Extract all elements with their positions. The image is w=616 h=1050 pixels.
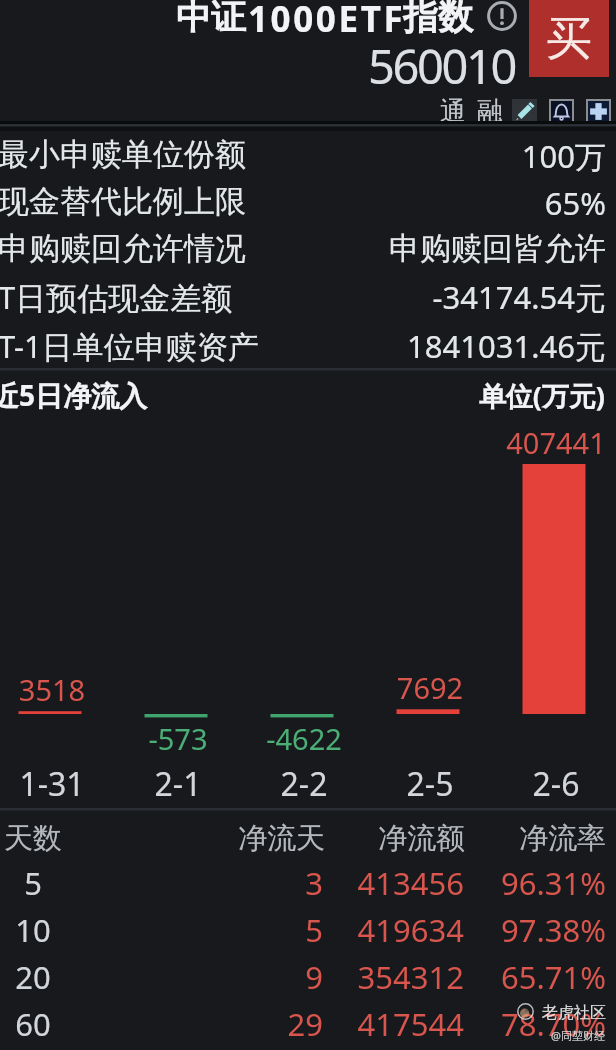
button[interactable]: 现金替代比例上限 xyxy=(0,176,616,223)
staticText: 2-2 xyxy=(204,762,404,806)
staticText: 3518 xyxy=(0,670,152,709)
staticText: 7692 xyxy=(330,668,530,707)
staticText: 指数 xyxy=(403,0,473,39)
button[interactable]: 5 xyxy=(0,858,616,905)
staticText: 老虎社区 xyxy=(542,1003,606,1023)
staticText: 净流天 xyxy=(0,820,325,857)
staticText: 417544 xyxy=(44,1003,464,1045)
staticText: 买 xyxy=(546,10,592,68)
staticText: T-1日单位申赎资产 xyxy=(0,325,259,367)
staticText: 60 xyxy=(0,1003,133,1045)
button[interactable]: 买 xyxy=(529,0,609,77)
staticText: 5 xyxy=(0,909,323,951)
staticText: 天数 xyxy=(4,820,62,857)
staticText: 1000ETF xyxy=(248,0,406,43)
staticText: 407441 xyxy=(456,423,616,462)
staticText: 2-5 xyxy=(330,762,530,806)
staticText: 单位(万元) xyxy=(185,377,605,414)
button[interactable]: 10 xyxy=(0,905,616,952)
staticText: 10 xyxy=(0,909,133,951)
staticText: -573 xyxy=(78,719,278,758)
button[interactable]: T-1日单位申赎资产 xyxy=(0,319,616,366)
staticText: 65.71% xyxy=(186,956,606,998)
staticText: 29 xyxy=(0,1003,323,1045)
staticText: 净流率 xyxy=(186,820,606,857)
button[interactable]: 申购赎回允许情况 xyxy=(0,223,616,270)
staticText: 97.38% xyxy=(186,909,606,951)
staticText: 净流额 xyxy=(45,820,465,857)
staticText: -34174.54元 xyxy=(186,276,606,318)
staticText: 申购赎回允许情况 xyxy=(0,229,246,268)
staticText: 100万 xyxy=(186,135,606,177)
staticText: T日预估现金差额 xyxy=(0,276,233,318)
staticText: 96.31% xyxy=(186,862,606,904)
staticText: 通 xyxy=(440,95,466,128)
button[interactable]: Info xyxy=(487,1,517,31)
staticText: 申购赎回皆允许 xyxy=(186,229,606,268)
staticText: @同堃财经 xyxy=(551,1028,605,1043)
staticText: 5 xyxy=(0,862,133,904)
button[interactable]: Edit xyxy=(512,99,537,124)
staticText: 2-1 xyxy=(78,762,278,806)
staticText: 78.70% xyxy=(186,1003,606,1045)
staticText: 9 xyxy=(0,956,323,998)
staticText: 1841031.46元 xyxy=(186,325,606,367)
staticText: 3 xyxy=(0,862,323,904)
staticText: -4622 xyxy=(204,719,404,758)
button[interactable]: 20 xyxy=(0,952,616,999)
staticText: 近5日净流入 xyxy=(0,376,148,414)
staticText: 融 xyxy=(477,95,503,128)
staticText: 2-6 xyxy=(456,762,616,806)
button[interactable]: 60 xyxy=(0,999,616,1046)
staticText: 现金替代比例上限 xyxy=(0,182,246,221)
button[interactable]: 最小申赎单位份额 xyxy=(0,129,616,176)
staticText: 20 xyxy=(0,956,133,998)
staticText: 354312 xyxy=(44,956,464,998)
button[interactable]: Price alert xyxy=(549,99,574,124)
staticText: 419634 xyxy=(44,909,464,951)
button[interactable]: Add to watchlist xyxy=(586,99,611,124)
staticText: 560010 xyxy=(368,34,515,98)
staticText: 中证 xyxy=(176,0,246,39)
staticText: 413456 xyxy=(44,862,464,904)
staticText: 1-31 xyxy=(0,762,152,806)
staticText: 65% xyxy=(186,182,606,224)
button[interactable]: T日预估现金差额 xyxy=(0,270,616,317)
staticText: 最小申赎单位份额 xyxy=(0,135,246,174)
